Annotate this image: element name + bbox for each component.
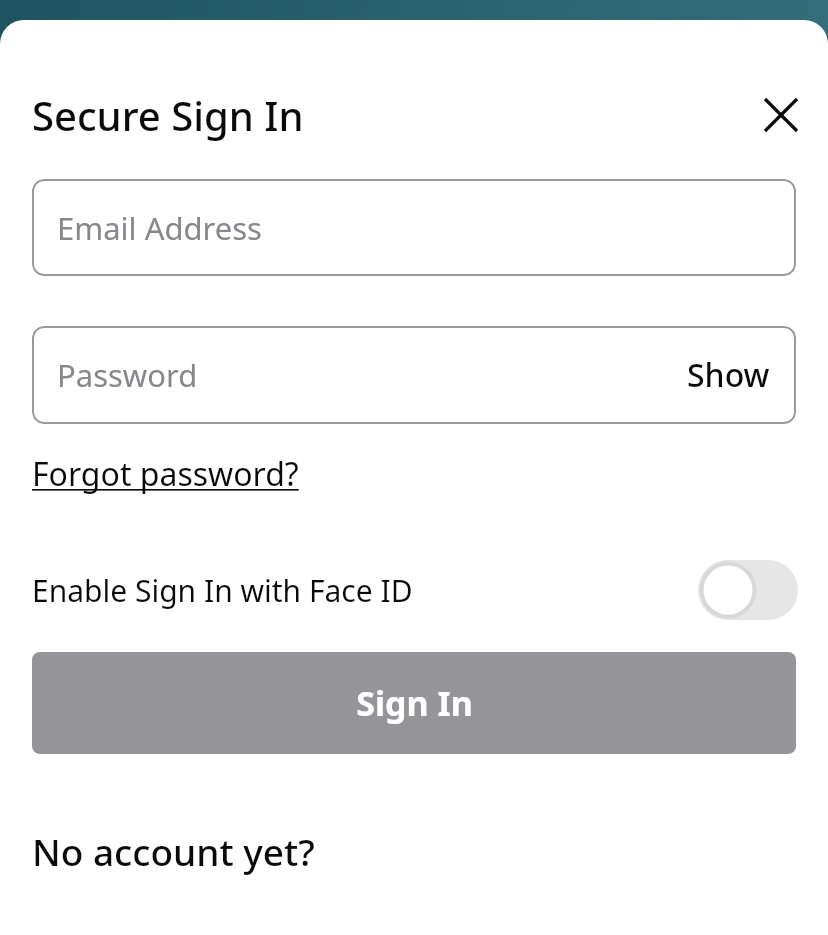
button[interactable]: Forgot password? (32, 452, 299, 496)
staticText: Email Address (57, 207, 262, 249)
button[interactable]: Close (756, 90, 806, 140)
staticText: Secure Sign In (32, 88, 304, 142)
button[interactable]: Sign In (32, 652, 796, 754)
staticText: No account yet? (32, 826, 315, 876)
staticText: Forgot password? (32, 452, 299, 496)
staticText: Enable Sign In with Face ID (32, 570, 413, 611)
staticText: Sign In (356, 680, 473, 726)
button[interactable]: No account yet? (32, 826, 315, 876)
button[interactable]: Email Address (32, 179, 796, 276)
button[interactable]: Show (661, 326, 796, 424)
staticText: Show (687, 353, 770, 397)
button[interactable]: Enable Sign In with Face ID toggle (698, 560, 798, 620)
staticText: Password (57, 354, 198, 396)
